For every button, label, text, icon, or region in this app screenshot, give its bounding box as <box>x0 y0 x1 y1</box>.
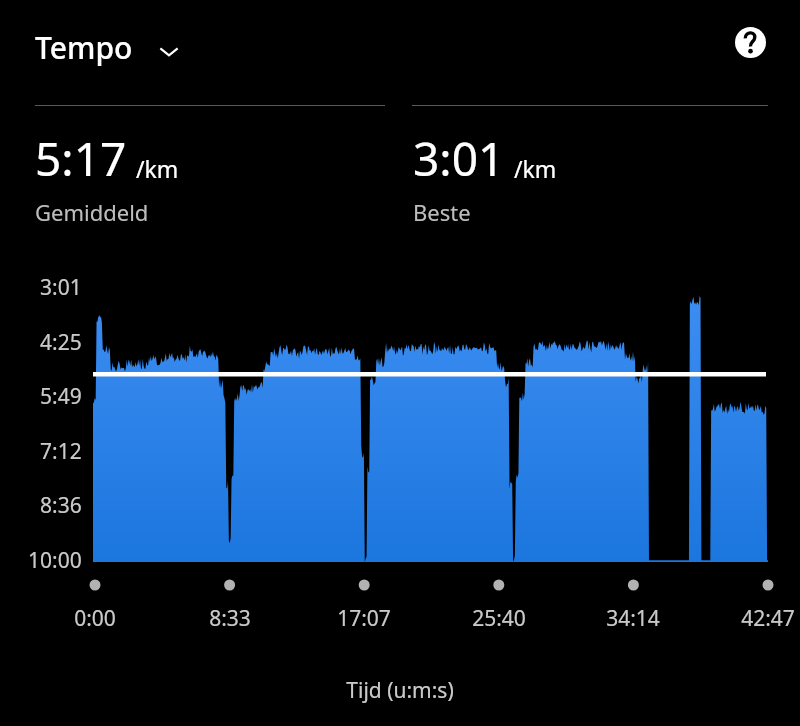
staticText: 42:47 <box>713 604 800 633</box>
staticText: Gemiddeld <box>35 197 149 227</box>
staticText: 3:01 <box>40 273 82 302</box>
staticText: /km <box>514 153 557 184</box>
staticText: 5:49 <box>40 382 82 411</box>
staticText: 3:01 <box>413 127 505 190</box>
staticText: 4:25 <box>40 328 82 357</box>
button[interactable]: Help <box>722 14 778 70</box>
staticText: Tempo <box>35 27 133 68</box>
staticText: 7:12 <box>40 437 82 466</box>
staticText: Beste <box>413 197 471 227</box>
staticText: 5:17 <box>35 127 127 190</box>
staticText: 8:33 <box>175 604 285 633</box>
staticText: Tijd (u:m:s) <box>0 676 800 705</box>
staticText: 10:00 <box>28 546 82 575</box>
staticText: 17:07 <box>309 604 419 633</box>
staticText: 8:36 <box>40 491 82 520</box>
staticText: 34:14 <box>578 604 688 633</box>
staticText: 25:40 <box>444 604 554 633</box>
staticText: /km <box>136 153 179 184</box>
button[interactable]: Tempo <box>27 20 189 75</box>
staticText: 0:00 <box>40 604 150 633</box>
